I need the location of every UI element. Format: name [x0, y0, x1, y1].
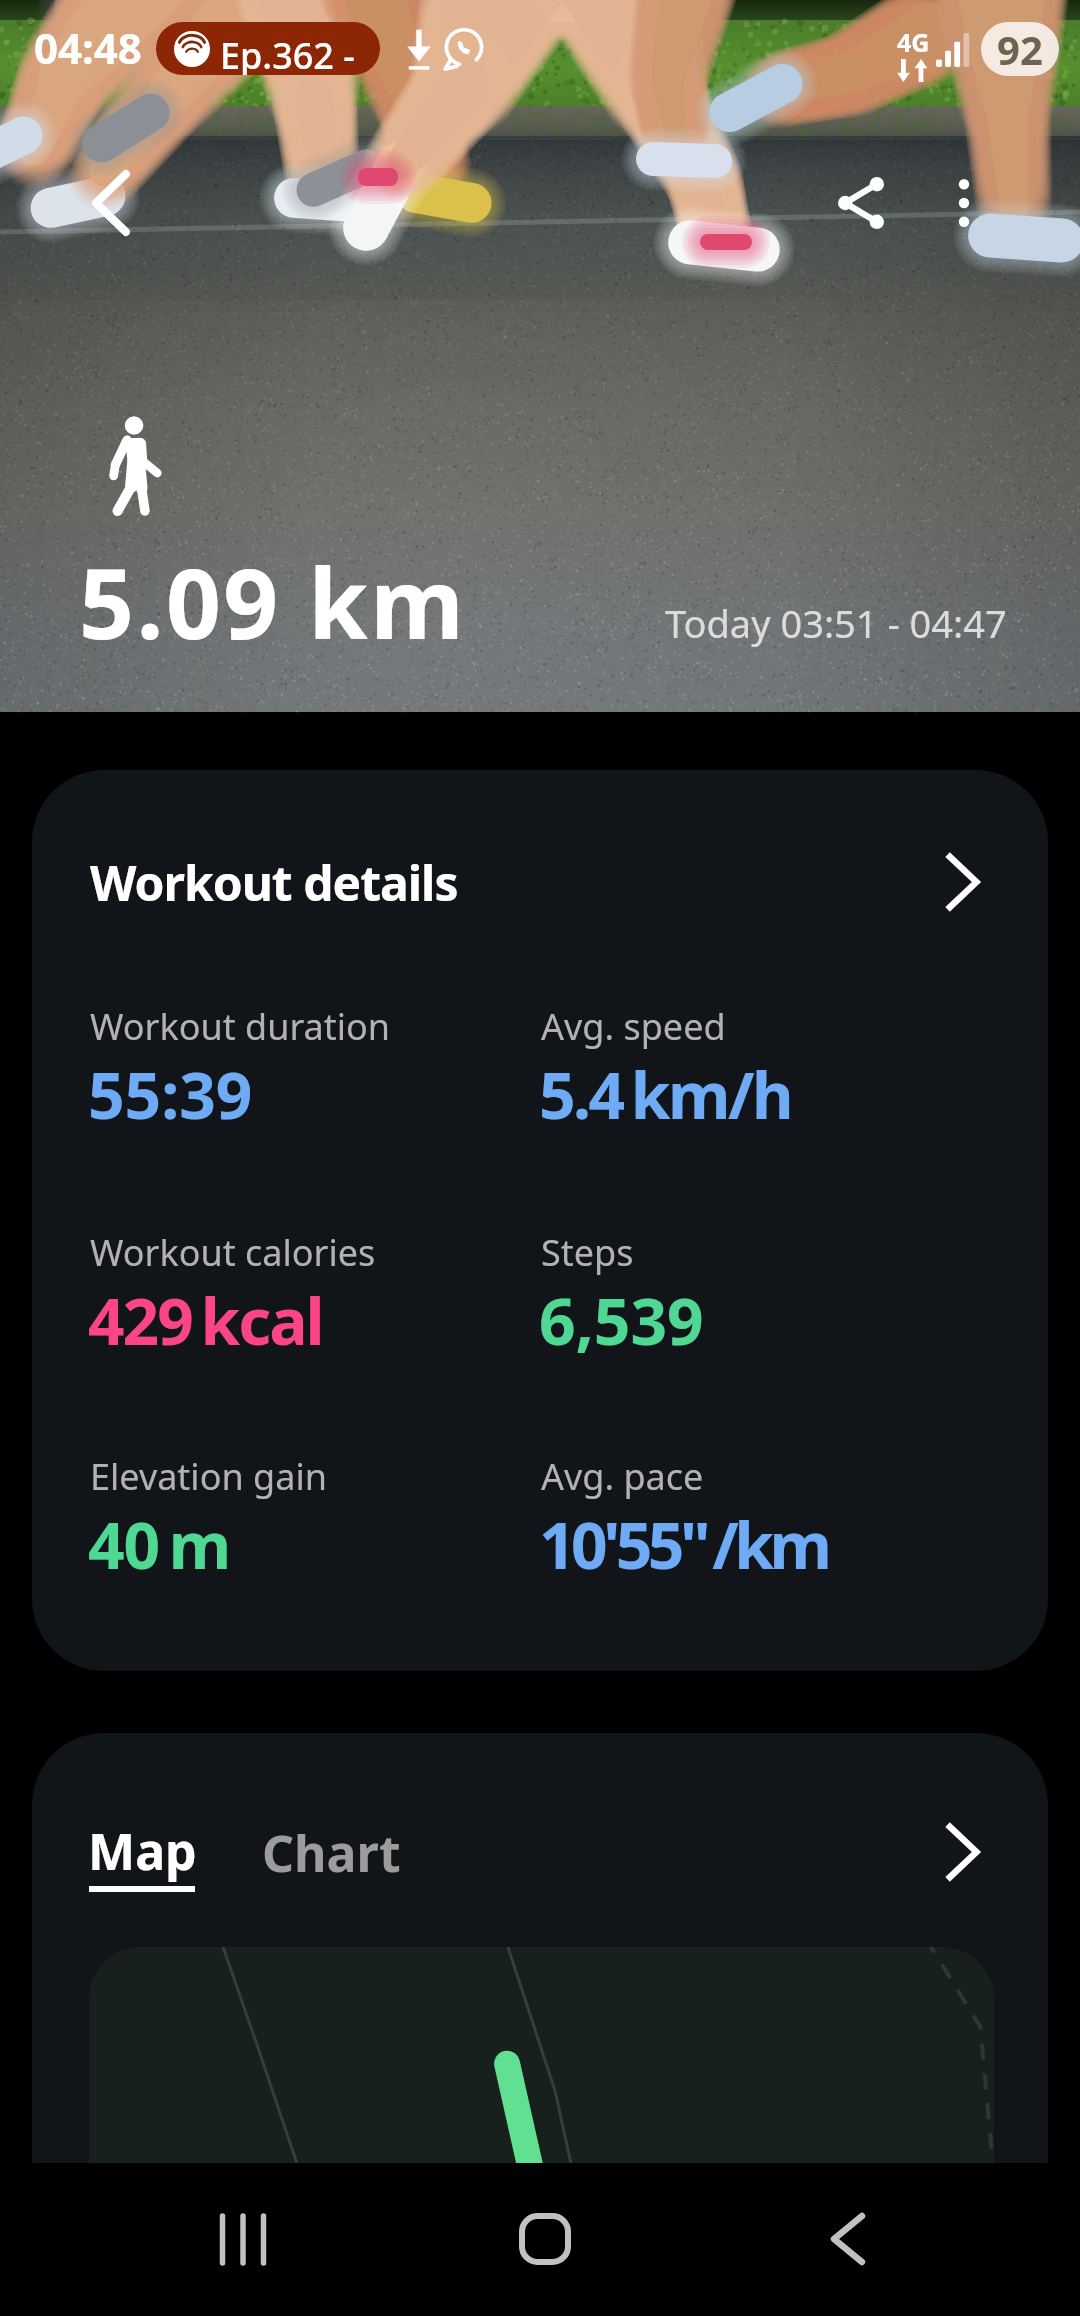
button[interactable]: Recent apps	[184, 2175, 304, 2303]
staticText: Map	[88, 1817, 197, 1885]
staticText: 5.4 km/h	[539, 1051, 792, 1138]
staticText: 5.09 km	[79, 536, 467, 667]
staticText: Steps	[541, 1228, 634, 1277]
button[interactable]: Map	[84, 1817, 196, 1895]
staticText: Workout duration	[90, 1002, 391, 1051]
button[interactable]: Open map	[922, 1812, 1002, 1892]
button[interactable]: Navigate up	[53, 145, 169, 261]
staticText: Avg. speed	[541, 1002, 726, 1051]
staticText: 10'55" /km	[539, 1501, 828, 1588]
button[interactable]: Chart	[262, 1819, 401, 1887]
staticText: Workout details	[90, 850, 458, 915]
staticText: 04:48	[34, 19, 142, 76]
staticText: Elevation gain	[90, 1452, 327, 1501]
staticText: Ep.362 -	[220, 31, 365, 75]
button[interactable]: More options	[906, 145, 1022, 261]
button[interactable]: Workout details	[32, 770, 1048, 1671]
staticText: 4G	[897, 25, 930, 59]
staticText: 40 m	[88, 1501, 231, 1588]
button[interactable]: Home	[485, 2175, 605, 2303]
staticText: Workout calories	[90, 1228, 376, 1277]
staticText: Avg. pace	[541, 1452, 704, 1501]
staticText: 429 kcal	[88, 1277, 323, 1364]
button[interactable]: Back	[788, 2175, 908, 2303]
staticText: 6,539	[539, 1277, 704, 1364]
button[interactable]: Share	[803, 145, 919, 261]
staticText: 55:39	[88, 1051, 253, 1138]
staticText: 92	[997, 22, 1043, 76]
button[interactable]: Open workout details	[922, 842, 1002, 922]
staticText: Today 03:51 - 04:47	[665, 597, 1007, 649]
